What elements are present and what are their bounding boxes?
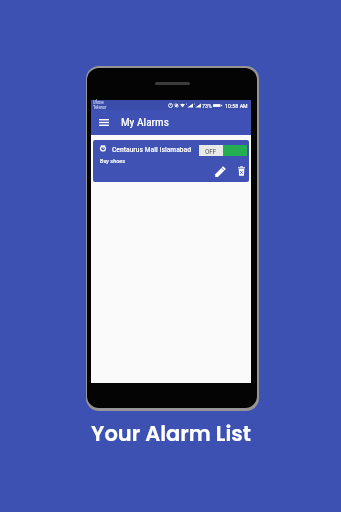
staticText: Your Alarm List [91,419,251,448]
staticText: 10:58 AM [225,102,248,109]
staticText: Telenor [93,105,107,110]
staticText: OFF [205,147,217,155]
button[interactable]: Centaurus Mall Islamabad [93,140,249,182]
button[interactable]: Open navigation menu [94,113,113,132]
staticText: My Alarms [121,115,169,128]
button[interactable]: Edit alarm [212,163,228,179]
staticText: 73% [202,102,212,109]
staticText: Ufone [93,100,104,105]
button[interactable]: Delete alarm [233,163,249,179]
staticText: Buy shoes [100,157,126,164]
button[interactable]: OFF [199,145,247,156]
staticText: Centaurus Mall Islamabad [112,145,192,154]
